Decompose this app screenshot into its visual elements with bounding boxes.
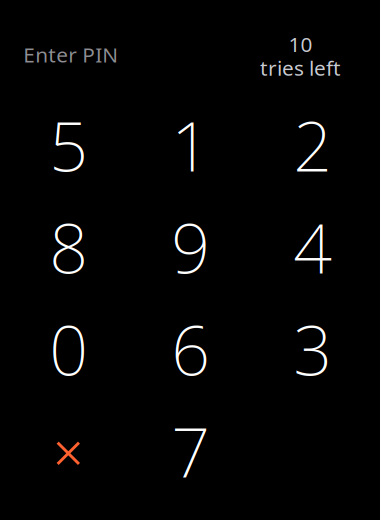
staticText: Enter PIN xyxy=(23,40,118,69)
staticText: 1 xyxy=(171,99,210,191)
button[interactable]: 1 xyxy=(130,94,252,196)
button[interactable]: 9 xyxy=(130,196,252,298)
staticText: 10 xyxy=(288,30,312,58)
button[interactable]: Delete xyxy=(8,400,130,502)
button[interactable]: 7 xyxy=(130,400,252,502)
staticText: 2 xyxy=(293,99,332,191)
staticText: tries left xyxy=(260,54,341,82)
staticText: 6 xyxy=(171,303,210,395)
button[interactable]: 0 xyxy=(8,298,130,400)
button[interactable]: 2 xyxy=(252,94,374,196)
button[interactable]: 6 xyxy=(130,298,252,400)
button[interactable]: 5 xyxy=(8,94,130,196)
button[interactable]: 4 xyxy=(252,196,374,298)
staticText: 9 xyxy=(171,201,210,293)
staticText: 8 xyxy=(49,201,88,293)
staticText: 4 xyxy=(293,201,332,293)
button[interactable]: 3 xyxy=(252,298,374,400)
button[interactable]: 8 xyxy=(8,196,130,298)
staticText: 0 xyxy=(49,303,88,395)
staticText: 3 xyxy=(293,303,332,395)
staticText: 5 xyxy=(49,99,88,191)
staticText: 7 xyxy=(171,405,210,497)
